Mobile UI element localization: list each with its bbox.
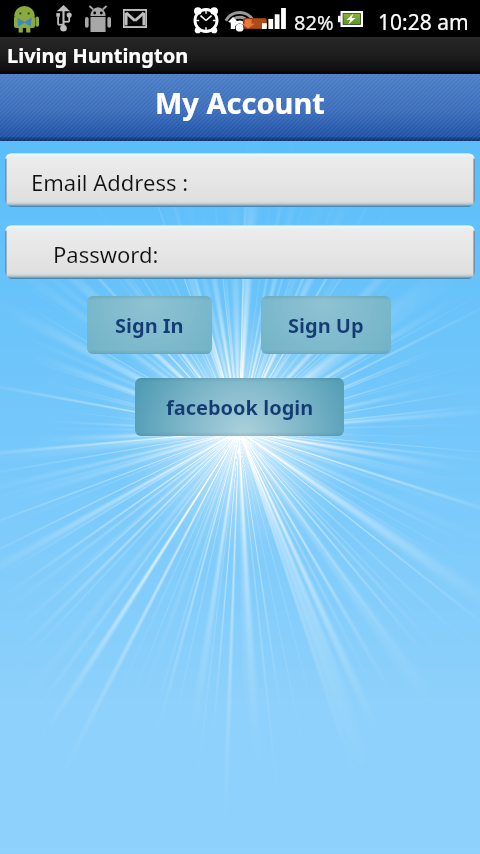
staticText: Sign In bbox=[115, 312, 184, 339]
staticText: Sign Up bbox=[288, 312, 364, 339]
button[interactable]: facebook login bbox=[135, 378, 344, 436]
staticText: My Account bbox=[155, 83, 325, 122]
staticText: 82% bbox=[294, 9, 334, 36]
staticText: facebook login bbox=[166, 394, 314, 421]
button[interactable]: Sign Up bbox=[261, 296, 391, 354]
button[interactable]: Sign In bbox=[87, 296, 212, 354]
staticText: Living Huntington bbox=[7, 42, 189, 69]
button[interactable]: Email Address : bbox=[5, 153, 475, 207]
staticText: Password: bbox=[53, 239, 159, 269]
staticText: Email Address : bbox=[31, 167, 189, 197]
button[interactable]: Password: bbox=[5, 225, 475, 279]
staticText: 10:28 am bbox=[378, 8, 469, 37]
